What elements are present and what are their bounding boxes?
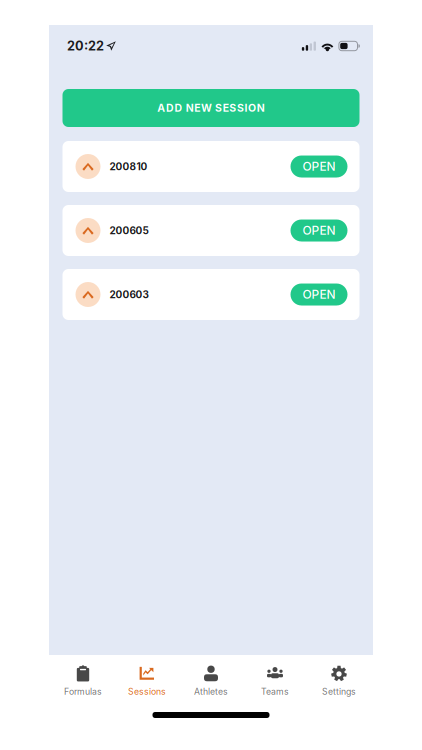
button[interactable]: OPEN [290,219,347,241]
button[interactable]: Athletes [179,661,243,701]
staticText: ADD NEW SESSION [157,102,265,114]
button[interactable]: 200810 [62,141,359,192]
staticText: Teams [261,686,289,697]
staticText: Settings [322,686,356,697]
button[interactable]: 200603 [62,269,359,320]
button[interactable]: Teams [243,661,307,701]
staticText: 20:22 [67,38,104,54]
staticText: OPEN [302,287,335,302]
button[interactable]: Formulas [51,661,115,701]
staticText: Sessions [128,686,166,697]
button[interactable]: ADD NEW SESSION [62,89,359,127]
staticText: OPEN [302,159,335,174]
button[interactable]: Sessions [115,661,179,701]
staticText: Athletes [194,686,228,697]
button[interactable]: 200605 [62,205,359,256]
staticText: 200810 [109,160,147,173]
staticText: OPEN [302,223,335,238]
button[interactable]: OPEN [290,283,347,305]
staticText: 200603 [109,288,148,301]
button[interactable]: Settings [307,661,371,701]
button[interactable]: OPEN [290,155,347,177]
staticText: Formulas [64,686,102,697]
staticText: 200605 [109,224,148,237]
